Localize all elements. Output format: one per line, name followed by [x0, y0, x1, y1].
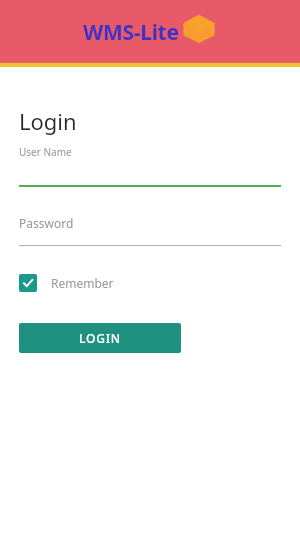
staticText: Remember — [51, 275, 114, 291]
button[interactable]: Remember — [19, 274, 114, 292]
other: WMS-Lite logo — [180, 12, 218, 50]
staticText: Login — [19, 106, 77, 136]
staticText: LOGIN — [79, 330, 121, 346]
staticText: Password — [19, 215, 74, 231]
staticText: User Name — [19, 145, 72, 159]
button[interactable]: LOGIN — [19, 323, 181, 353]
staticText: WMS-Lite — [83, 18, 179, 47]
